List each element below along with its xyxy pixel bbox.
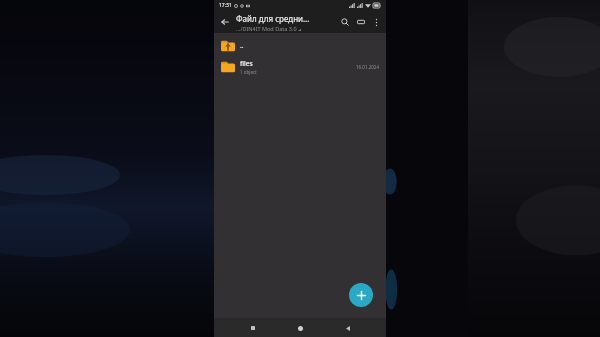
button[interactable]: .. xyxy=(214,35,386,56)
staticText: .../DIN4IT Mod Data 3.0 xyxy=(236,25,297,32)
staticText: 17:31 xyxy=(219,2,232,9)
button[interactable]: View mode xyxy=(353,14,369,30)
staticText: .. xyxy=(240,41,244,50)
staticText: 1 object xyxy=(240,69,257,75)
button[interactable]: Back xyxy=(339,319,357,337)
button[interactable]: Back xyxy=(217,14,233,30)
button[interactable]: Recents xyxy=(244,319,262,337)
staticText: Файл для средни… xyxy=(236,13,310,24)
button[interactable]: Search xyxy=(337,14,353,30)
button[interactable]: More options xyxy=(369,15,383,29)
button[interactable]: Home xyxy=(291,319,309,337)
button[interactable]: Add xyxy=(349,283,373,307)
staticText: files xyxy=(240,59,253,68)
staticText: 16.01.2024 xyxy=(356,64,380,70)
button[interactable]: files xyxy=(214,56,386,77)
